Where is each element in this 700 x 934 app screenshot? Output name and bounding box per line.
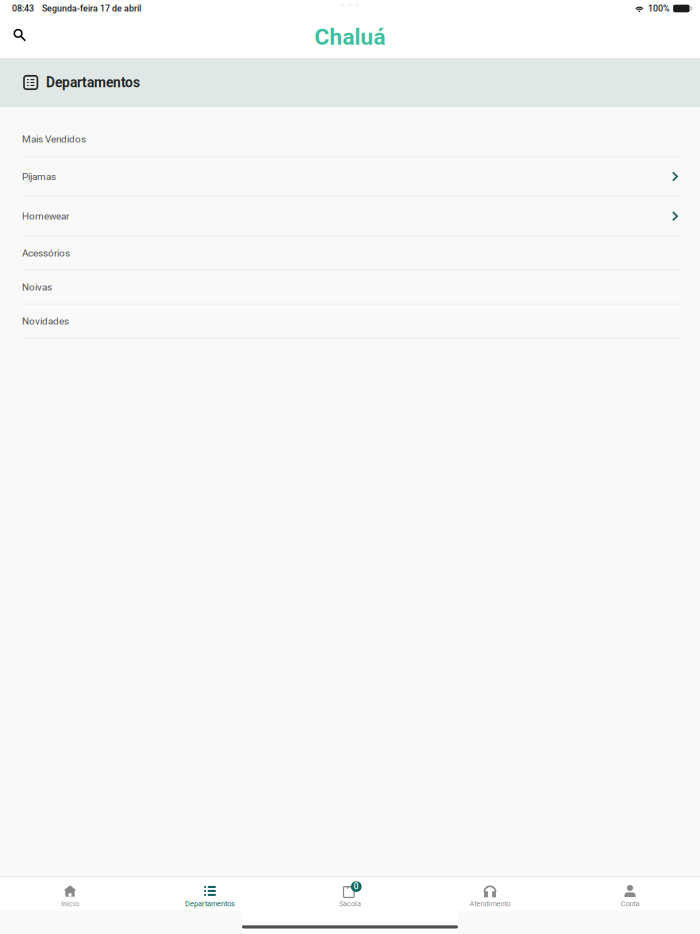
staticText: Departamentos (46, 74, 140, 91)
staticText: Noivas (22, 281, 52, 293)
button[interactable]: Novidades (0, 305, 700, 339)
staticText: Início (61, 899, 79, 908)
staticText: Segunda-feira 17 de abril (42, 3, 141, 14)
button[interactable]: Mais Vendidos (0, 122, 700, 157)
staticText: Acessórios (22, 247, 70, 259)
button[interactable]: Início (0, 877, 140, 911)
button[interactable]: Acessórios (0, 236, 700, 271)
button[interactable]: Pijamas (0, 157, 700, 197)
button[interactable]: Homewear (0, 197, 700, 236)
button[interactable]: Search (4, 20, 34, 50)
button[interactable]: Departamentos (140, 877, 280, 911)
button[interactable]: 0 (280, 877, 420, 911)
staticText: Sacola (339, 899, 361, 908)
button[interactable]: Noivas (0, 271, 700, 305)
staticText: Pijamas (22, 171, 56, 182)
staticText: 0 (354, 881, 359, 891)
staticText: Atendimento (469, 899, 510, 908)
staticText: 100% (648, 3, 670, 14)
button[interactable]: Conta (560, 877, 700, 911)
staticText: Conta (620, 899, 639, 908)
button[interactable]: Atendimento (420, 877, 560, 911)
staticText: Novidades (22, 315, 69, 327)
staticText: 08:43 (12, 3, 34, 14)
staticText: Departamentos (185, 899, 235, 908)
staticText: Homewear (22, 210, 69, 222)
staticText: Mais Vendidos (22, 133, 86, 145)
staticText: Chaluá (314, 24, 385, 50)
